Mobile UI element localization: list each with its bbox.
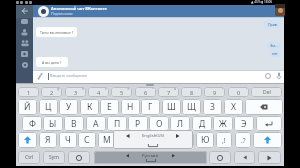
staticText: Д [199,118,206,130]
button[interactable] [253,132,282,148]
button[interactable] [68,151,90,164]
button[interactable]: Т [137,132,155,148]
button[interactable]: П [107,116,127,131]
staticText: Р [135,118,141,130]
button[interactable]: Эм... [267,42,281,49]
staticText: 6 [144,89,148,96]
button[interactable]: К [80,99,99,115]
button[interactable]: 4 [88,87,109,97]
staticText: П [114,118,121,130]
button[interactable]: А вы даня ? [36,57,68,67]
button[interactable] [265,73,271,79]
button[interactable]: Типы вы люливые ? [36,27,77,37]
button[interactable] [21,29,28,36]
button[interactable] [234,151,255,164]
staticText: М [103,134,111,146]
staticText: Х [231,101,236,113]
button[interactable]: Sym [43,151,65,164]
button[interactable]: Э [234,116,254,131]
button[interactable] [256,116,282,131]
staticText: Ц [45,101,52,113]
button[interactable]: Ч [59,132,77,148]
button[interactable] [245,99,283,115]
button[interactable]: Del [251,87,282,97]
button[interactable]: 7 [158,87,179,97]
button[interactable]: 8 [181,87,202,97]
button[interactable] [258,151,281,164]
staticText: Подписчики [51,11,73,16]
button[interactable]: Х [224,99,243,115]
button[interactable] [22,62,28,68]
staticText: Й [24,101,31,113]
button[interactable]: И [117,132,135,148]
button[interactable]: Я [39,132,57,148]
button[interactable]: Ц [39,99,58,115]
button[interactable]: Ф [22,116,42,131]
button[interactable]: 0 [228,87,249,97]
button[interactable]: 3 [65,87,86,97]
button[interactable]: 9 [204,87,225,97]
button[interactable] [276,72,282,80]
staticText: Э [241,118,247,130]
button[interactable]: Е [100,99,119,115]
button[interactable]: С [78,132,96,148]
button[interactable]: Ь [157,132,175,148]
button[interactable]: Прив. [264,20,281,28]
staticText: @ [57,87,60,91]
button[interactable]: 5 [111,87,132,97]
button[interactable]: З [203,99,222,115]
button[interactable]: Д [192,116,212,131]
button[interactable]: ,! [216,132,232,148]
button[interactable]: нет [269,50,281,57]
button[interactable] [21,40,29,47]
button[interactable]: Р [128,116,148,131]
button[interactable]: Й [18,99,37,115]
button[interactable]: 1 [18,87,39,97]
button[interactable] [38,6,49,17]
button[interactable]: Ш [162,99,181,115]
button[interactable]: 6 [135,87,156,97]
button[interactable] [16,5,33,18]
staticText: В [71,118,77,130]
button[interactable]: Б [176,132,194,148]
staticText: 7 [167,89,171,96]
button[interactable] [33,70,284,83]
button[interactable]: Г [141,99,160,115]
button[interactable]: В [64,116,84,131]
button[interactable] [18,132,37,148]
staticText: Ж [219,118,227,130]
staticText: Ctrl [25,154,34,161]
button[interactable] [275,4,285,16]
staticText: И [123,134,130,146]
button[interactable]: У [59,99,78,115]
staticText: Т [144,134,149,146]
staticText: Прив. [268,22,278,27]
button[interactable]: 2 [41,87,62,97]
button[interactable]: Л [170,116,190,131]
button[interactable] [37,72,43,80]
staticText: Щ [187,101,196,113]
staticText: Ф [29,118,36,130]
staticText: Типы вы люливые ? [40,30,74,35]
button[interactable]: Ю [196,132,214,148]
staticText: К [87,101,93,113]
staticText: $ [105,87,107,91]
staticText: * [198,87,200,91]
button[interactable]: .? [235,132,251,148]
button[interactable]: Щ [182,99,201,115]
staticText: Del [263,89,271,96]
button[interactable]: М [98,132,116,148]
button[interactable] [209,151,231,164]
button[interactable] [21,51,28,57]
staticText: Л [177,118,183,130]
button[interactable]: Русский [94,151,207,164]
button[interactable]: А [86,116,106,131]
button[interactable] [21,19,28,24]
staticText: ,! [222,136,226,145]
button[interactable]: О [149,116,169,131]
button[interactable]: Ж [213,116,233,131]
staticText: % [127,87,130,91]
button[interactable]: Ctrl [18,151,40,164]
button[interactable]: Н [121,99,140,115]
button[interactable]: Ы [43,116,63,131]
